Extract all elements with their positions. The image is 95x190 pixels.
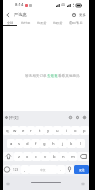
button[interactable]: Customer service (70, 11, 77, 18)
button[interactable]: m (68, 152, 77, 161)
button[interactable]: Send (74, 165, 89, 174)
button[interactable]: j (58, 139, 67, 148)
button[interactable]: 待发货 (34, 19, 50, 26)
button[interactable]: v (41, 152, 50, 161)
button[interactable]: b (50, 152, 59, 161)
staticText: 待收货 (53, 21, 63, 25)
button[interactable]: t (35, 126, 44, 135)
staticText: [中文] (9, 115, 19, 120)
button[interactable]: a (7, 139, 15, 148)
button[interactable]: x (23, 152, 32, 161)
staticText: . (60, 167, 62, 173)
button[interactable]: Settings (4, 115, 9, 120)
button[interactable]: 退款/售后 (66, 19, 86, 26)
button[interactable]: l (76, 139, 85, 148)
button[interactable]: Numbers (11, 165, 21, 174)
staticText: 更多 (79, 13, 86, 17)
staticText: n (62, 154, 65, 160)
button[interactable]: h (49, 139, 58, 148)
staticText: v (44, 154, 47, 160)
staticText: a (10, 141, 13, 147)
button[interactable]: Back (3, 10, 13, 19)
button[interactable]: Input method (3, 165, 11, 174)
staticText: r (30, 128, 32, 134)
staticText: 退款/售后 (69, 21, 83, 25)
staticText: p (83, 128, 86, 134)
button[interactable]: p (80, 126, 89, 135)
staticText: 去逛逛 (47, 74, 58, 79)
staticText: 严选惠 (14, 12, 27, 17)
staticText: w (13, 128, 17, 134)
staticText: q (6, 128, 9, 134)
staticText: m (71, 154, 75, 160)
staticText: f (35, 141, 37, 147)
staticText: 发送 (79, 168, 85, 172)
staticText: u (56, 128, 59, 134)
staticText: c (35, 154, 38, 160)
staticText: 待发货 (37, 21, 47, 25)
staticText: 中文 (40, 168, 46, 172)
button[interactable]: Backspace (77, 152, 89, 161)
button[interactable]: e (19, 126, 27, 135)
button[interactable]: o (71, 126, 80, 135)
button[interactable]: y (44, 126, 53, 135)
button[interactable]: , (21, 165, 29, 174)
button[interactable]: Voice input (65, 165, 74, 174)
staticText: k (70, 141, 73, 147)
button[interactable]: 待收货 (50, 19, 66, 26)
button[interactable]: . (57, 165, 65, 174)
staticText: g (43, 141, 46, 147)
staticText: , (24, 167, 26, 173)
button[interactable]: 全部 (3, 19, 18, 26)
staticText: 看看其他商品 (58, 74, 80, 79)
button[interactable]: u (53, 126, 62, 135)
button[interactable]: g (40, 139, 49, 148)
staticText: l (80, 141, 82, 147)
button[interactable]: k (67, 139, 76, 148)
staticText: 123 (13, 168, 19, 172)
button[interactable]: f (31, 139, 40, 148)
button[interactable]: s (15, 139, 23, 148)
staticText: s (18, 141, 21, 147)
staticText: 待付款 (21, 21, 31, 25)
button[interactable]: Shift (3, 152, 14, 161)
staticText: z (18, 154, 20, 160)
button[interactable]: n (59, 152, 68, 161)
staticText: y (47, 128, 50, 134)
staticText: t (39, 128, 41, 134)
staticText: i (66, 128, 68, 134)
button[interactable]: z (14, 152, 23, 161)
button[interactable]: Clipboard (74, 114, 81, 121)
button[interactable]: More (78, 11, 87, 18)
button[interactable]: Settings (81, 114, 88, 121)
staticText: x (26, 154, 29, 160)
button[interactable]: d (23, 139, 31, 148)
staticText: 全部 (7, 21, 14, 25)
staticText: e (22, 128, 25, 134)
staticText: h (52, 141, 55, 147)
button[interactable]: Emoji (67, 114, 74, 121)
button[interactable]: Switch keyboard (79, 180, 86, 187)
staticText: d (26, 141, 29, 147)
button[interactable]: 待付款 (18, 19, 34, 26)
button[interactable]: w (11, 126, 19, 135)
button[interactable]: Space (29, 165, 57, 174)
button[interactable]: q (3, 126, 11, 135)
staticText: o (74, 128, 77, 134)
staticText: 4G (61, 3, 66, 7)
staticText: j (62, 141, 64, 147)
staticText: 暂无相关订单 (25, 74, 47, 79)
staticText: b (53, 154, 56, 160)
button[interactable]: c (32, 152, 41, 161)
staticText: 8:14 (15, 2, 24, 8)
button[interactable]: r (27, 126, 35, 135)
button[interactable]: Hide keyboard (4, 180, 11, 187)
button[interactable]: i (62, 126, 71, 135)
